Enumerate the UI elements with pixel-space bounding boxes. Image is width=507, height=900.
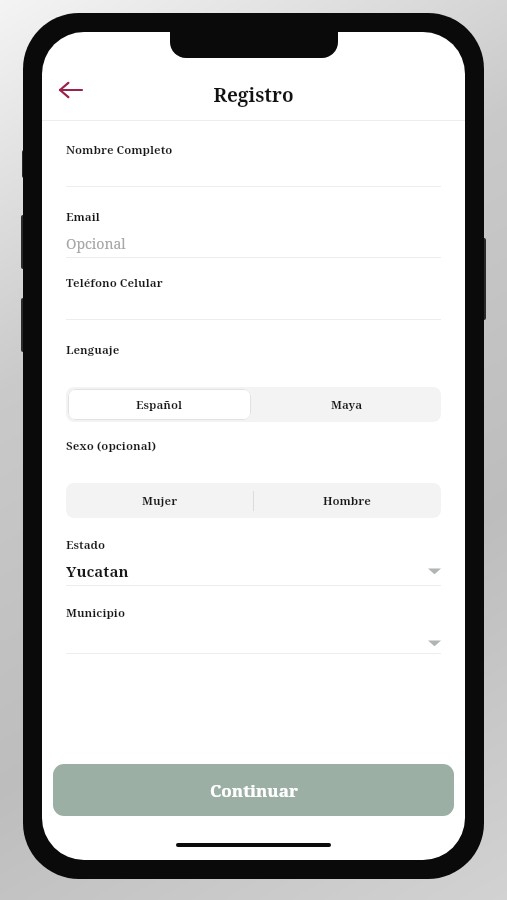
staticText: Mujer xyxy=(142,493,178,509)
staticText: Yucatan xyxy=(66,561,129,581)
staticText: Hombre xyxy=(323,493,371,509)
staticText: Municipio xyxy=(66,605,125,621)
button[interactable]: Municipio xyxy=(66,605,441,654)
staticText: Email xyxy=(66,209,100,225)
button[interactable]: Email xyxy=(66,209,441,258)
staticText: Lenguaje xyxy=(66,342,120,358)
button[interactable]: Mujer xyxy=(66,483,253,518)
button[interactable]: Hombre xyxy=(253,483,441,518)
staticText: Continuar xyxy=(210,779,298,802)
staticText: Registro xyxy=(213,82,294,108)
staticText: Sexo (opcional) xyxy=(66,438,157,454)
button[interactable]: Maya xyxy=(253,387,441,422)
button[interactable]: Español xyxy=(68,389,251,420)
staticText: Teléfono Celular xyxy=(66,275,163,291)
staticText: Opcional xyxy=(66,234,126,253)
button[interactable]: Back xyxy=(50,69,92,111)
staticText: Nombre Completo xyxy=(66,142,173,158)
button[interactable]: Nombre Completo xyxy=(66,142,441,187)
button[interactable]: Estado xyxy=(66,537,441,586)
button[interactable]: Continuar xyxy=(53,764,454,816)
staticText: Estado xyxy=(66,537,106,553)
staticText: Maya xyxy=(331,397,363,413)
button[interactable]: Teléfono Celular xyxy=(66,275,441,320)
staticText: Español xyxy=(136,397,183,413)
